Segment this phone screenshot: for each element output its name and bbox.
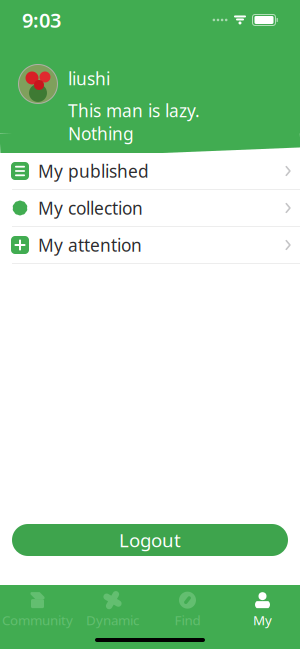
button[interactable]: Community	[0, 590, 75, 630]
staticText: Dynamic	[86, 611, 139, 629]
staticText: Find	[174, 611, 200, 629]
staticText: My collection	[38, 196, 143, 219]
button[interactable]: My collection	[0, 190, 300, 227]
staticText: Logout	[119, 528, 181, 552]
staticText: My published	[38, 159, 149, 182]
staticText: liushi	[68, 67, 110, 90]
staticText: This man is lazy. Nothing	[68, 99, 200, 145]
button[interactable]: Dynamic	[75, 590, 150, 630]
button[interactable]: My published	[0, 153, 300, 190]
button[interactable]: Logout	[12, 524, 288, 556]
staticText: 9:03	[22, 7, 61, 33]
button[interactable]: Find	[150, 590, 225, 630]
button[interactable]: My attention	[0, 227, 300, 264]
staticText: My	[253, 611, 272, 629]
staticText: My attention	[38, 233, 142, 256]
button[interactable]: My	[225, 590, 300, 630]
staticText: Community	[2, 611, 73, 629]
